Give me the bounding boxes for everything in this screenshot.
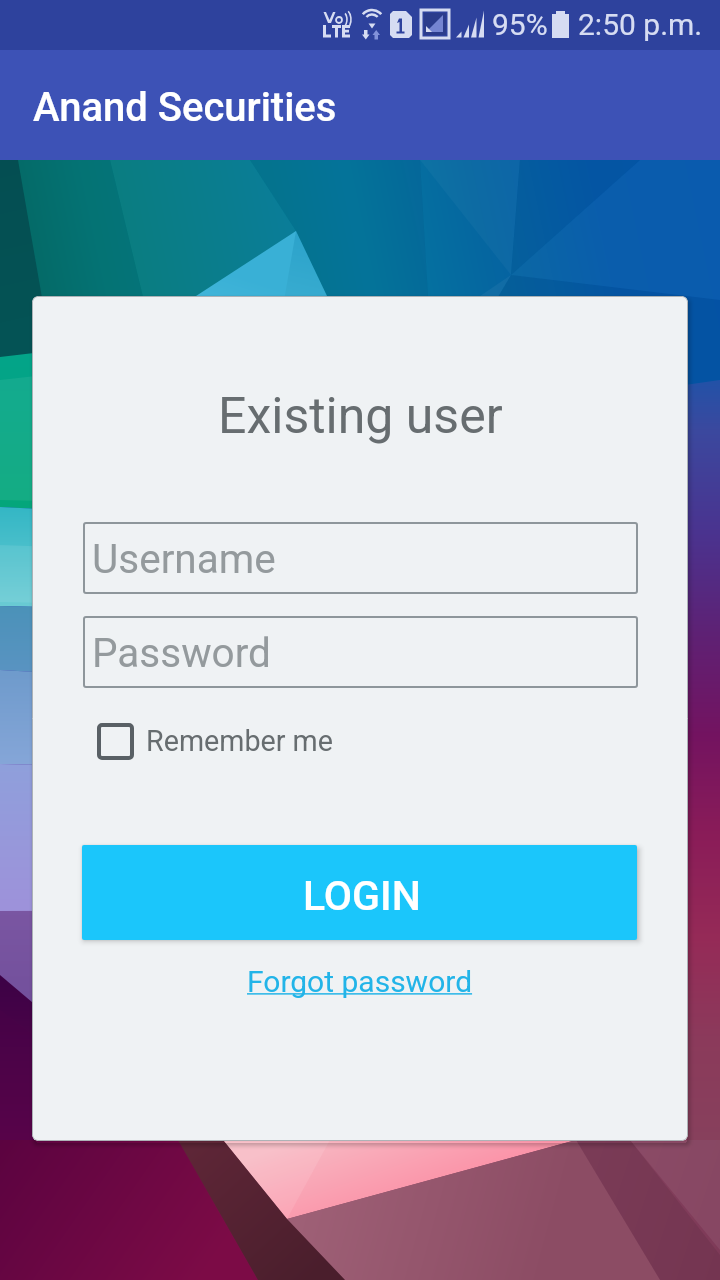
staticText: Existing user [218, 387, 503, 446]
staticText: Remember me [146, 724, 333, 758]
button[interactable]: LOGIN [82, 845, 637, 940]
staticText: 2:50 p.m. [578, 7, 703, 42]
button[interactable]: Forgot password [212, 956, 508, 1006]
staticText: Anand Securities [33, 84, 337, 131]
staticText: Password [92, 629, 271, 676]
staticText: LOGIN [303, 872, 421, 920]
staticText: Username [92, 535, 276, 582]
staticText: Forgot password [247, 964, 473, 999]
staticText: 95% [492, 7, 548, 42]
button[interactable]: Username [83, 522, 638, 594]
button[interactable]: Remember me [97, 715, 333, 767]
button[interactable]: Password [83, 616, 638, 688]
